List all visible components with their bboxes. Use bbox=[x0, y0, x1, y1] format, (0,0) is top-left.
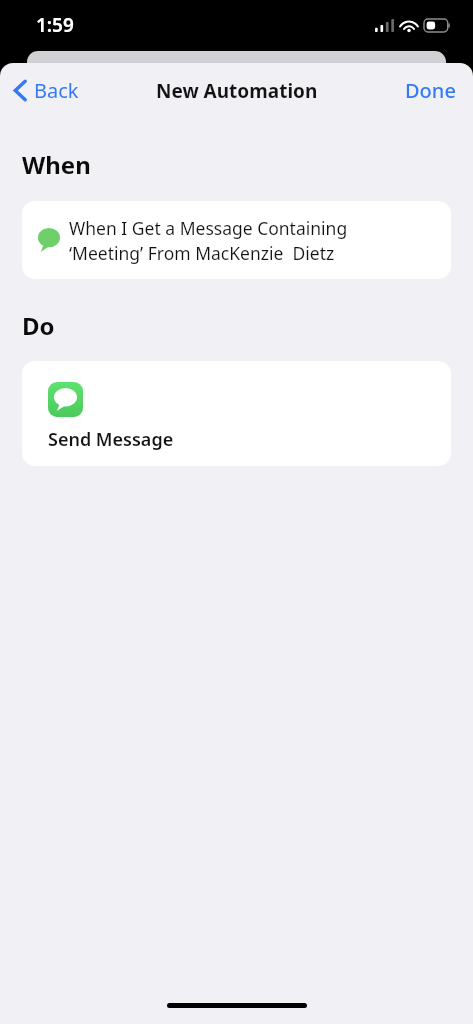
button[interactable]: When I Get a Message Containing ‘Meeting… bbox=[22, 201, 451, 279]
staticText: Done bbox=[405, 77, 456, 104]
staticText: When I Get a Message Containing ‘Meeting… bbox=[69, 216, 348, 265]
staticText: When bbox=[22, 148, 91, 181]
staticText: 1:59 bbox=[36, 12, 74, 38]
staticText: Back bbox=[34, 77, 79, 104]
button[interactable]: Send Message bbox=[22, 361, 451, 466]
button[interactable]: Back bbox=[0, 71, 89, 110]
button[interactable]: Done bbox=[393, 71, 473, 110]
staticText: New Automation bbox=[156, 78, 318, 104]
staticText: Send Message bbox=[48, 427, 174, 452]
staticText: Do bbox=[22, 309, 55, 342]
